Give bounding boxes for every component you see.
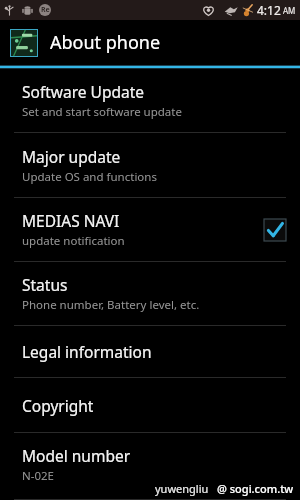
- staticText: 4:12: [257, 2, 281, 18]
- staticText: Update OS and functions: [22, 169, 157, 185]
- staticText: Model number: [22, 445, 131, 466]
- button[interactable]: Copyright: [0, 378, 300, 432]
- button[interactable]: About phone: [0, 20, 300, 65]
- staticText: AM: [283, 5, 296, 16]
- staticText: About phone: [50, 30, 161, 55]
- staticText: MEDIAS NAVI: [22, 210, 120, 231]
- button[interactable]: Major update: [0, 133, 300, 197]
- staticText: Major update: [22, 146, 121, 167]
- button[interactable]: Software Update: [0, 69, 300, 132]
- button[interactable]: Model number: [0, 433, 300, 500]
- staticText: Status: [22, 274, 68, 295]
- staticText: N-02E: [22, 468, 54, 484]
- staticText: update notification: [22, 233, 125, 249]
- staticText: Set and start software update: [22, 104, 182, 120]
- other: MEDIAS NAVI update notification toggle: [264, 219, 286, 241]
- button[interactable]: Status: [0, 262, 300, 325]
- staticText: Legal information: [22, 341, 152, 362]
- staticText: Copyright: [22, 395, 94, 416]
- button[interactable]: MEDIAS NAVI: [0, 198, 300, 261]
- staticText: @ sogi.com.tw: [217, 481, 294, 496]
- button[interactable]: Legal information: [0, 326, 300, 377]
- staticText: Phone number, Battery level, etc.: [22, 297, 200, 313]
- staticText: Software Update: [22, 81, 144, 102]
- staticText: Re: [41, 5, 50, 15]
- staticText: yuwengliu: [155, 481, 209, 496]
